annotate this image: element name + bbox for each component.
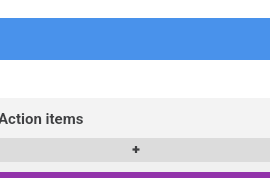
staticText: Action items xyxy=(0,110,84,128)
button[interactable]: Add action item xyxy=(0,138,270,162)
